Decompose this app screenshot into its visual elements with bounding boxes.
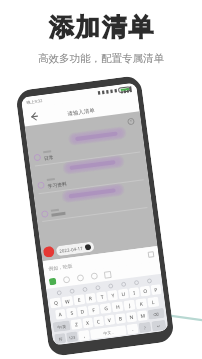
button[interactable]: 123 xyxy=(66,331,78,343)
button[interactable]: Back xyxy=(27,109,40,123)
button[interactable]: N xyxy=(126,311,137,323)
button[interactable]: I xyxy=(129,287,140,298)
button[interactable]: 中/英 xyxy=(52,320,71,332)
staticText: A xyxy=(58,311,63,319)
button[interactable]: Y xyxy=(107,290,118,301)
button[interactable]: C xyxy=(93,316,104,327)
button[interactable]: Keyboard option xyxy=(121,281,126,287)
staticText: E xyxy=(77,297,81,304)
button[interactable]: D xyxy=(77,306,88,317)
staticText: 中文 . xyxy=(103,329,115,336)
staticText: , xyxy=(83,332,86,339)
staticText: V xyxy=(107,317,112,324)
staticText: ⌫ xyxy=(153,311,160,316)
button[interactable]: M xyxy=(137,310,148,321)
staticText: U xyxy=(121,291,126,298)
staticText: B xyxy=(118,315,123,323)
staticText: Y xyxy=(111,292,115,299)
staticText: . xyxy=(132,326,135,333)
staticText: R xyxy=(88,295,93,302)
button[interactable]: Keyboard option xyxy=(147,278,152,284)
button[interactable]: Send xyxy=(49,278,57,286)
button[interactable]: Q xyxy=(49,297,62,309)
button[interactable]: 例如，吃饭 xyxy=(47,247,154,275)
staticText: T xyxy=(100,294,104,301)
button[interactable]: G xyxy=(99,303,112,314)
button[interactable]: Keyboard option xyxy=(134,280,139,285)
staticText: G xyxy=(104,305,109,313)
staticText: 学习资料 xyxy=(47,180,68,189)
staticText: 日常 xyxy=(44,154,54,161)
button[interactable]: 中文 . xyxy=(90,325,127,340)
staticText: 高效多功能，配置专属清单 xyxy=(38,52,164,65)
staticText: 晚上9:32 xyxy=(26,98,43,105)
staticText: S xyxy=(70,310,74,317)
staticText: 符 xyxy=(58,336,63,342)
button[interactable]: Attach xyxy=(104,271,111,278)
staticText: O xyxy=(143,288,148,295)
button[interactable]: W xyxy=(61,296,73,307)
button[interactable]: R xyxy=(85,293,96,304)
button[interactable]: Keyboard option xyxy=(56,290,62,296)
staticText: I xyxy=(133,289,136,297)
button[interactable]: 2022-04-17 xyxy=(43,240,95,258)
button[interactable]: A xyxy=(55,309,66,320)
staticText: C xyxy=(96,318,101,326)
button[interactable]: B xyxy=(115,313,126,324)
button[interactable]: Keyboard option xyxy=(95,285,101,290)
staticText: 例如，吃饭 xyxy=(48,262,73,271)
button[interactable]: ? xyxy=(138,322,152,333)
button[interactable]: J xyxy=(123,300,135,311)
staticText: ↵ xyxy=(157,323,161,328)
button[interactable]: T xyxy=(96,291,107,302)
staticText: 123 xyxy=(68,335,76,340)
staticText: L xyxy=(151,299,155,306)
button[interactable]: S xyxy=(66,307,77,318)
button[interactable]: ⌫ xyxy=(148,308,165,320)
button[interactable]: E xyxy=(73,294,85,305)
button[interactable]: , xyxy=(78,330,90,341)
button[interactable]: F xyxy=(88,304,100,316)
button[interactable]: Z xyxy=(70,319,83,330)
staticText: 请输入清单 xyxy=(67,107,96,118)
button[interactable]: O xyxy=(140,285,151,297)
staticText: X xyxy=(85,320,90,327)
staticText: K xyxy=(139,300,144,308)
button[interactable]: . xyxy=(126,323,139,335)
staticText: Z xyxy=(75,321,78,328)
button[interactable]: K xyxy=(135,298,147,309)
button[interactable]: 学习资料 xyxy=(37,176,68,190)
staticText: ? xyxy=(144,325,146,330)
staticText: J xyxy=(129,302,131,309)
staticText: 中/英 xyxy=(57,324,67,330)
staticText: F xyxy=(92,307,96,314)
button[interactable]: Tool xyxy=(76,274,84,282)
staticText: N xyxy=(129,314,134,321)
button[interactable]: 符 xyxy=(54,333,66,344)
button[interactable]: Reminder xyxy=(125,116,135,126)
button[interactable]: X xyxy=(82,317,93,328)
staticText: H xyxy=(116,303,121,311)
button[interactable]: L xyxy=(147,296,159,308)
button[interactable]: P xyxy=(150,284,162,295)
staticText: P xyxy=(154,286,159,294)
button[interactable]: Keyboard option xyxy=(69,288,75,294)
button[interactable]: Keyboard option xyxy=(108,283,114,289)
button[interactable]: Tool xyxy=(90,272,98,280)
button[interactable]: ↵ xyxy=(151,320,166,331)
staticText: W xyxy=(64,298,70,306)
button[interactable]: 日常 xyxy=(33,150,54,162)
staticText: Q xyxy=(54,300,58,307)
button[interactable] xyxy=(41,208,66,218)
button[interactable]: V xyxy=(104,314,115,326)
button[interactable]: Tool xyxy=(63,276,71,284)
button[interactable]: U xyxy=(118,288,129,299)
staticText: M xyxy=(140,312,146,320)
button[interactable]: Keyboard option xyxy=(82,287,88,292)
staticText: 添加清单 xyxy=(48,12,154,43)
staticText: D xyxy=(80,308,85,316)
button[interactable]: H xyxy=(111,301,124,313)
staticText: 2022-04-17 xyxy=(59,245,83,254)
